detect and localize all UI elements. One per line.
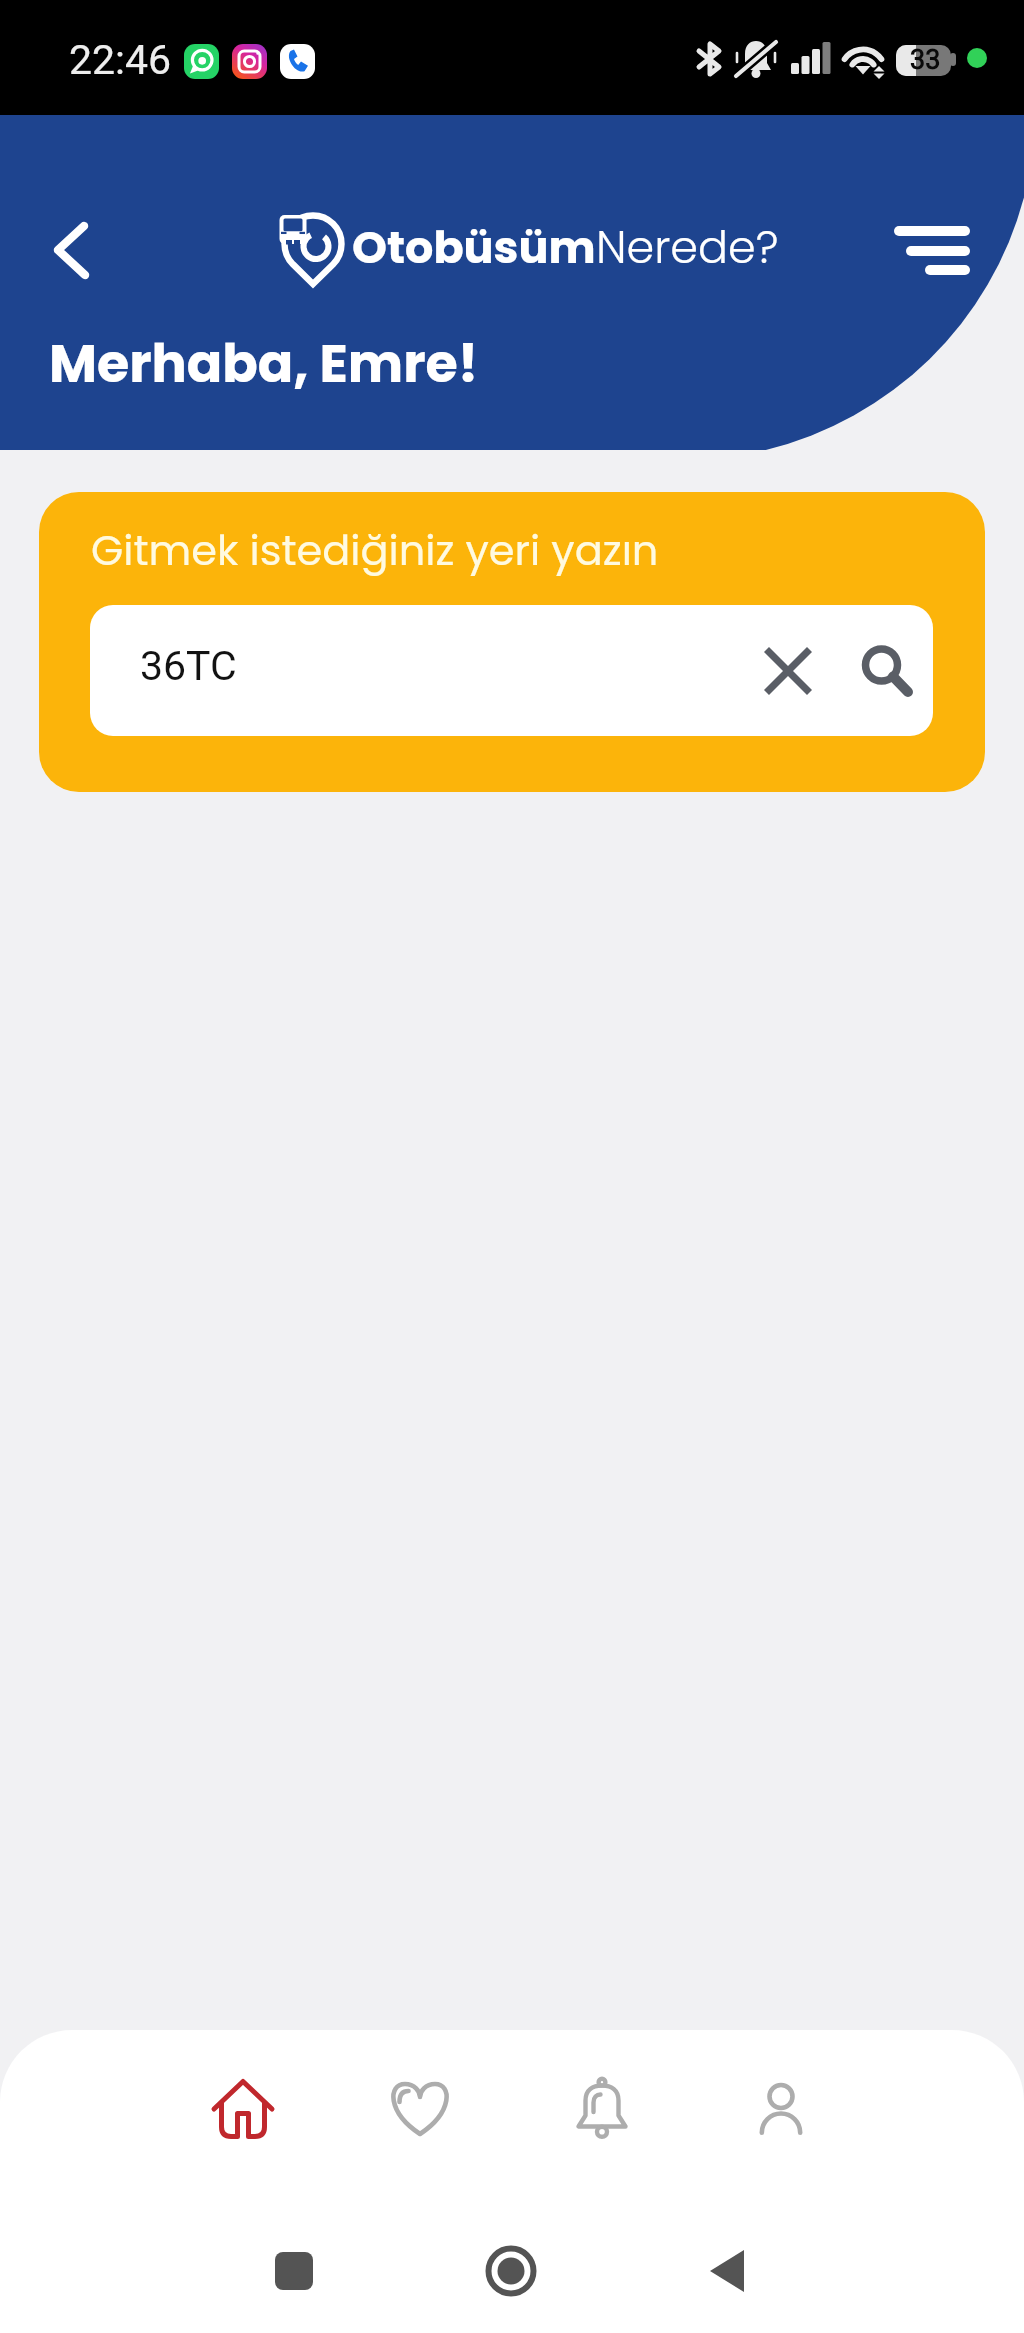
button[interactable]: Menu bbox=[880, 200, 990, 300]
button[interactable]: Favorites bbox=[358, 2054, 482, 2164]
staticText: 22:46 bbox=[69, 36, 172, 84]
staticText: Gitmek istediğiniz yeri yazın bbox=[91, 521, 659, 579]
button[interactable]: Home bbox=[181, 2054, 305, 2164]
button[interactable]: Profile bbox=[719, 2054, 843, 2164]
staticText: Nerede? bbox=[596, 216, 779, 278]
button[interactable]: Clear bbox=[748, 631, 828, 711]
button[interactable]: Notifications bbox=[540, 2054, 664, 2164]
staticText: 36TC bbox=[140, 642, 237, 690]
button[interactable]: Back bbox=[28, 206, 116, 294]
button[interactable]: 36TC bbox=[90, 605, 933, 736]
staticText: Merhaba, Emre! bbox=[49, 327, 479, 400]
button[interactable]: Search bbox=[838, 623, 928, 713]
staticText: 33 bbox=[910, 44, 941, 76]
staticText: Otobüsüm bbox=[352, 216, 596, 278]
